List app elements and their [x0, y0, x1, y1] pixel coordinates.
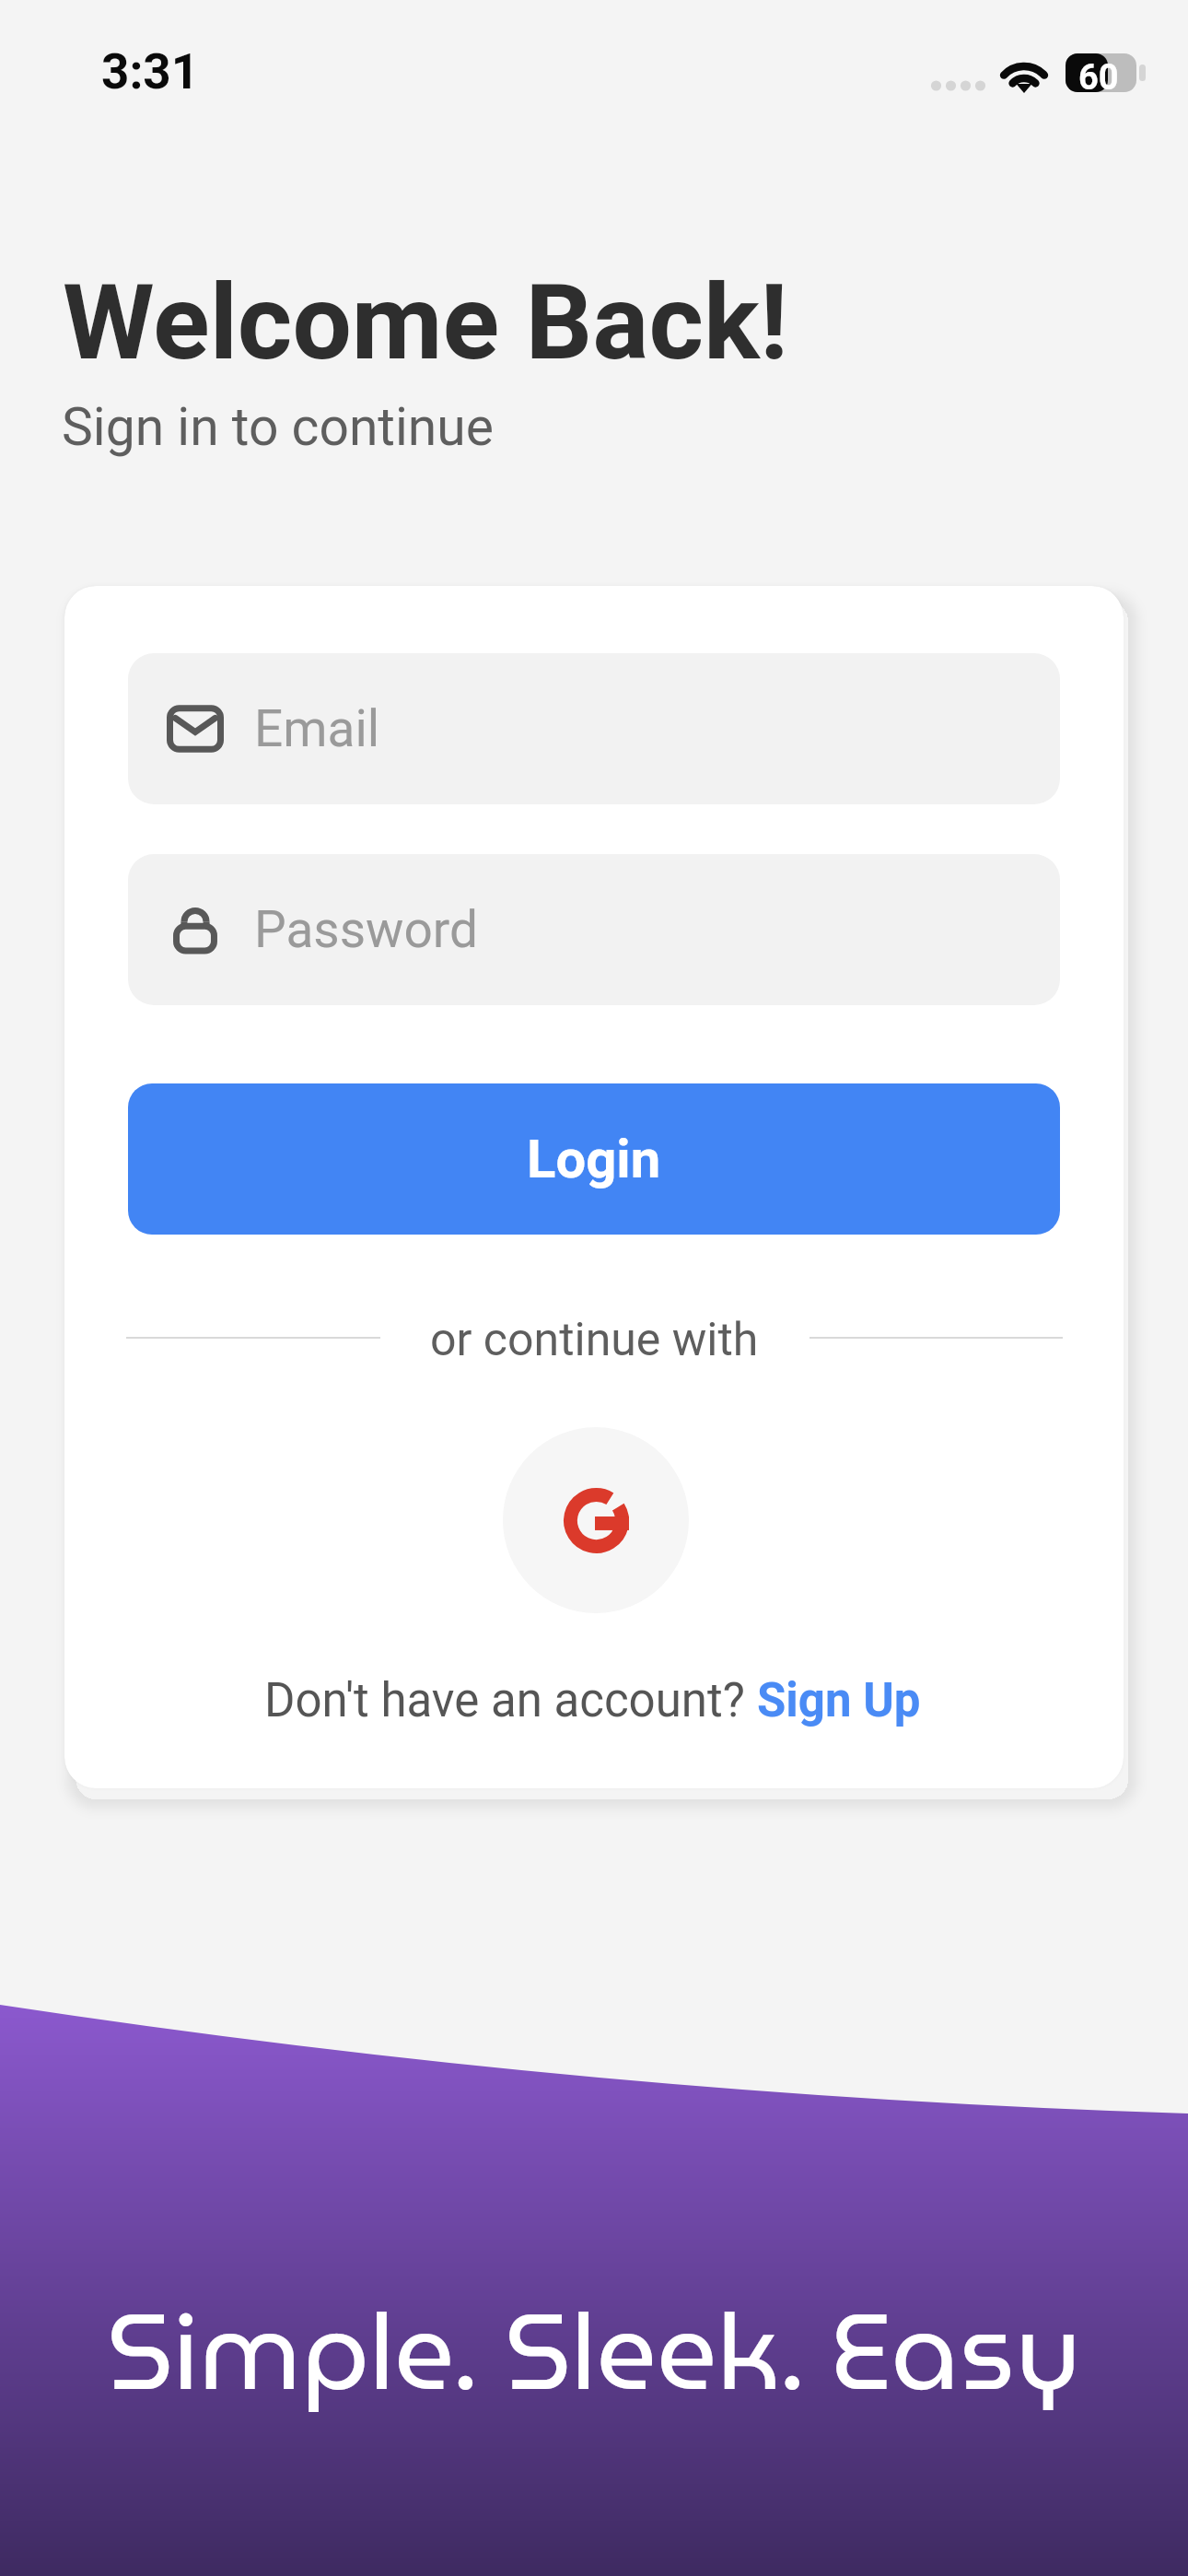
button[interactable]: Sign Up — [757, 1673, 921, 1728]
button[interactable]: Continue with Google — [503, 1427, 689, 1613]
staticText: Login — [527, 1128, 661, 1190]
staticText: Sign in to continue — [62, 396, 494, 458]
staticText: Password — [254, 900, 478, 959]
staticText: Don't have an account? — [264, 1673, 757, 1728]
staticText: 3:31 — [101, 43, 200, 100]
staticText: Email — [254, 699, 380, 758]
button[interactable]: Password — [128, 854, 1060, 1005]
staticText: Simple. Sleek. Easy — [107, 2267, 1081, 2436]
staticText: Welcome Back! — [63, 261, 788, 384]
staticText: Sign Up — [757, 1673, 921, 1728]
staticText: 60 — [1078, 57, 1119, 96]
button[interactable]: Login — [128, 1083, 1060, 1235]
staticText: or continue with — [430, 1313, 759, 1367]
button[interactable]: Email — [128, 653, 1060, 804]
